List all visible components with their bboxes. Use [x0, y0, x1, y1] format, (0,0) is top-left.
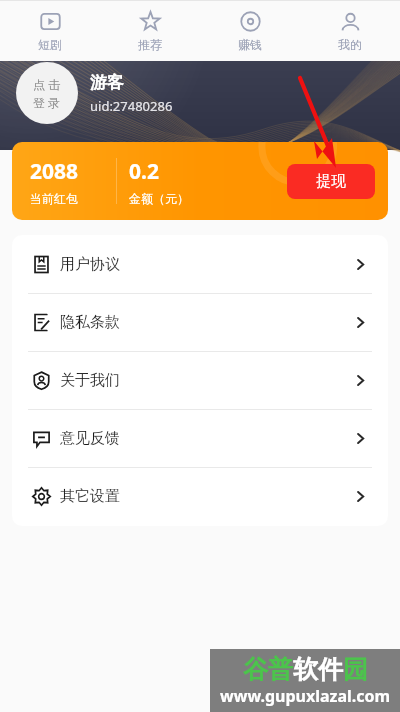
- staticText: 游客: [90, 72, 124, 93]
- button[interactable]: 提现: [287, 164, 375, 199]
- staticText: 推荐: [138, 37, 162, 52]
- staticText: 短剧: [38, 37, 62, 52]
- staticText: 谷普: [243, 654, 293, 685]
- staticText: 用户协议: [60, 255, 120, 274]
- staticText: uid:27480286: [90, 97, 173, 115]
- staticText: www.gupuxlazal.com: [220, 685, 391, 707]
- staticText: 0.2: [129, 157, 159, 186]
- button[interactable]: 赚钱: [200, 1, 300, 61]
- button[interactable]: 点击登录: [16, 62, 78, 124]
- staticText: 2088: [30, 157, 79, 186]
- button[interactable]: 推荐: [100, 1, 200, 61]
- button[interactable]: 关于我们: [12, 352, 388, 409]
- staticText: 赚钱: [238, 37, 262, 52]
- staticText: 其它设置: [60, 487, 120, 506]
- staticText: 关于我们: [60, 371, 120, 390]
- staticText: 当前红包: [30, 191, 78, 206]
- button[interactable]: 短剧: [0, 1, 100, 61]
- button[interactable]: 意见反馈: [12, 410, 388, 467]
- staticText: 我的: [338, 37, 362, 52]
- button[interactable]: 其它设置: [12, 468, 388, 525]
- button[interactable]: 用户协议: [12, 236, 388, 293]
- staticText: 软件: [293, 654, 343, 685]
- staticText: 园: [343, 654, 368, 685]
- staticText: 点 击: [33, 76, 61, 92]
- staticText: 隐私条款: [60, 313, 120, 332]
- staticText: 登 录: [33, 94, 61, 110]
- button[interactable]: 我的: [300, 1, 400, 61]
- staticText: 提现: [316, 172, 346, 191]
- staticText: 金额（元）: [129, 191, 189, 206]
- button[interactable]: 隐私条款: [12, 294, 388, 351]
- staticText: 意见反馈: [60, 429, 120, 448]
